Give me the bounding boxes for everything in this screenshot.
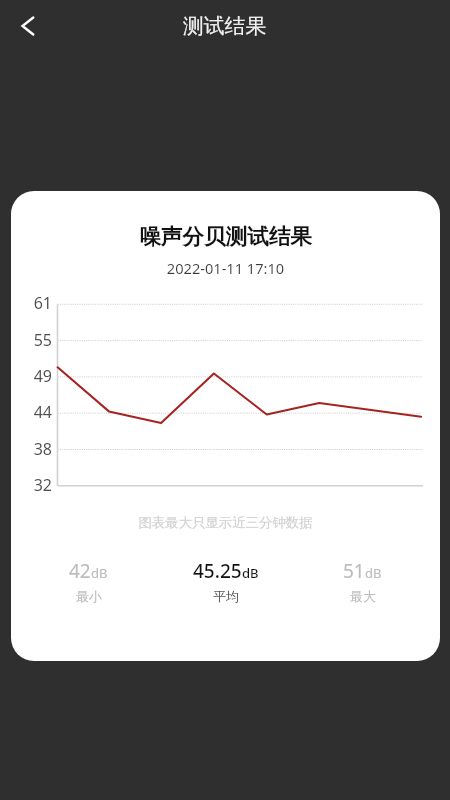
staticText: 44 — [32, 401, 52, 423]
staticText: 噪声分贝测试结果 — [11, 223, 440, 250]
staticText: 51 — [343, 558, 365, 584]
staticText: 图表最大只显示近三分钟数据 — [11, 514, 440, 531]
staticText: 最大 — [350, 588, 376, 604]
staticText: 2022-01-11 17:10 — [11, 258, 440, 278]
staticText: 45.25 — [193, 558, 242, 584]
staticText: 平均 — [213, 588, 239, 604]
staticText: 49 — [32, 365, 52, 387]
staticText: 38 — [32, 438, 52, 460]
staticText: 55 — [32, 329, 52, 351]
staticText: dB — [91, 564, 108, 582]
staticText: dB — [365, 564, 382, 582]
staticText: 32 — [32, 474, 52, 496]
button[interactable]: Back — [0, 0, 52, 52]
staticText: 42 — [69, 558, 91, 584]
staticText: 最小 — [76, 588, 102, 604]
staticText: 61 — [32, 292, 52, 314]
staticText: dB — [242, 564, 259, 582]
staticText: 测试结果 — [183, 13, 267, 39]
